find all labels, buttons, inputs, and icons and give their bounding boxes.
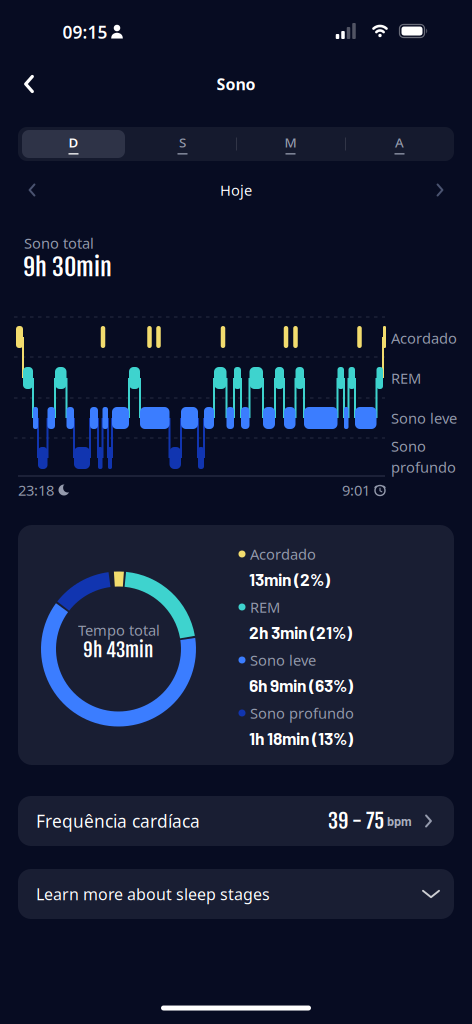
- staticText: 6h 9min (63%): [249, 675, 353, 695]
- button[interactable]: Dia anterior: [12, 173, 52, 207]
- staticText: Frequência cardíaca: [36, 809, 200, 832]
- button[interactable]: A: [348, 130, 451, 158]
- staticText: S: [179, 133, 186, 151]
- staticText: Acordado: [250, 544, 316, 564]
- staticText: Sono: [216, 73, 255, 95]
- staticText: 1h 18min (13%): [249, 728, 353, 748]
- staticText: 23:18: [18, 480, 54, 500]
- staticText: Acordado: [391, 328, 457, 348]
- staticText: Sono leve: [250, 650, 316, 670]
- staticText: Sono leve: [391, 408, 457, 428]
- staticText: 9h 30min: [23, 252, 112, 282]
- staticText: 2h 3min (21%): [249, 622, 352, 642]
- staticText: 09:15: [62, 20, 107, 43]
- button[interactable]: Back: [7, 62, 51, 106]
- staticText: Sono profundo: [250, 703, 354, 723]
- button[interactable]: S: [131, 130, 234, 158]
- button[interactable]: M: [239, 130, 342, 158]
- staticText: 9:01: [342, 480, 370, 500]
- staticText: Learn more about sleep stages: [36, 883, 270, 905]
- staticText: profundo: [391, 457, 456, 477]
- button[interactable]: Learn more about sleep stages: [18, 869, 454, 919]
- staticText: Sono: [391, 436, 426, 456]
- button[interactable]: D: [22, 130, 125, 158]
- staticText: REM: [391, 368, 421, 388]
- staticText: bpm: [384, 813, 412, 829]
- staticText: M: [284, 133, 296, 151]
- button[interactable]: Próximo dia: [420, 173, 460, 207]
- staticText: 39 - 75: [328, 808, 384, 834]
- staticText: A: [395, 133, 404, 151]
- staticText: 13min (2%): [249, 569, 330, 589]
- staticText: Tempo total: [78, 620, 160, 640]
- staticText: Hoje: [220, 180, 252, 200]
- button[interactable]: Frequência cardíaca: [18, 796, 454, 846]
- staticText: REM: [250, 597, 280, 617]
- staticText: D: [68, 133, 78, 151]
- staticText: 9h 43min: [83, 638, 153, 662]
- staticText: Sono total: [24, 233, 94, 253]
